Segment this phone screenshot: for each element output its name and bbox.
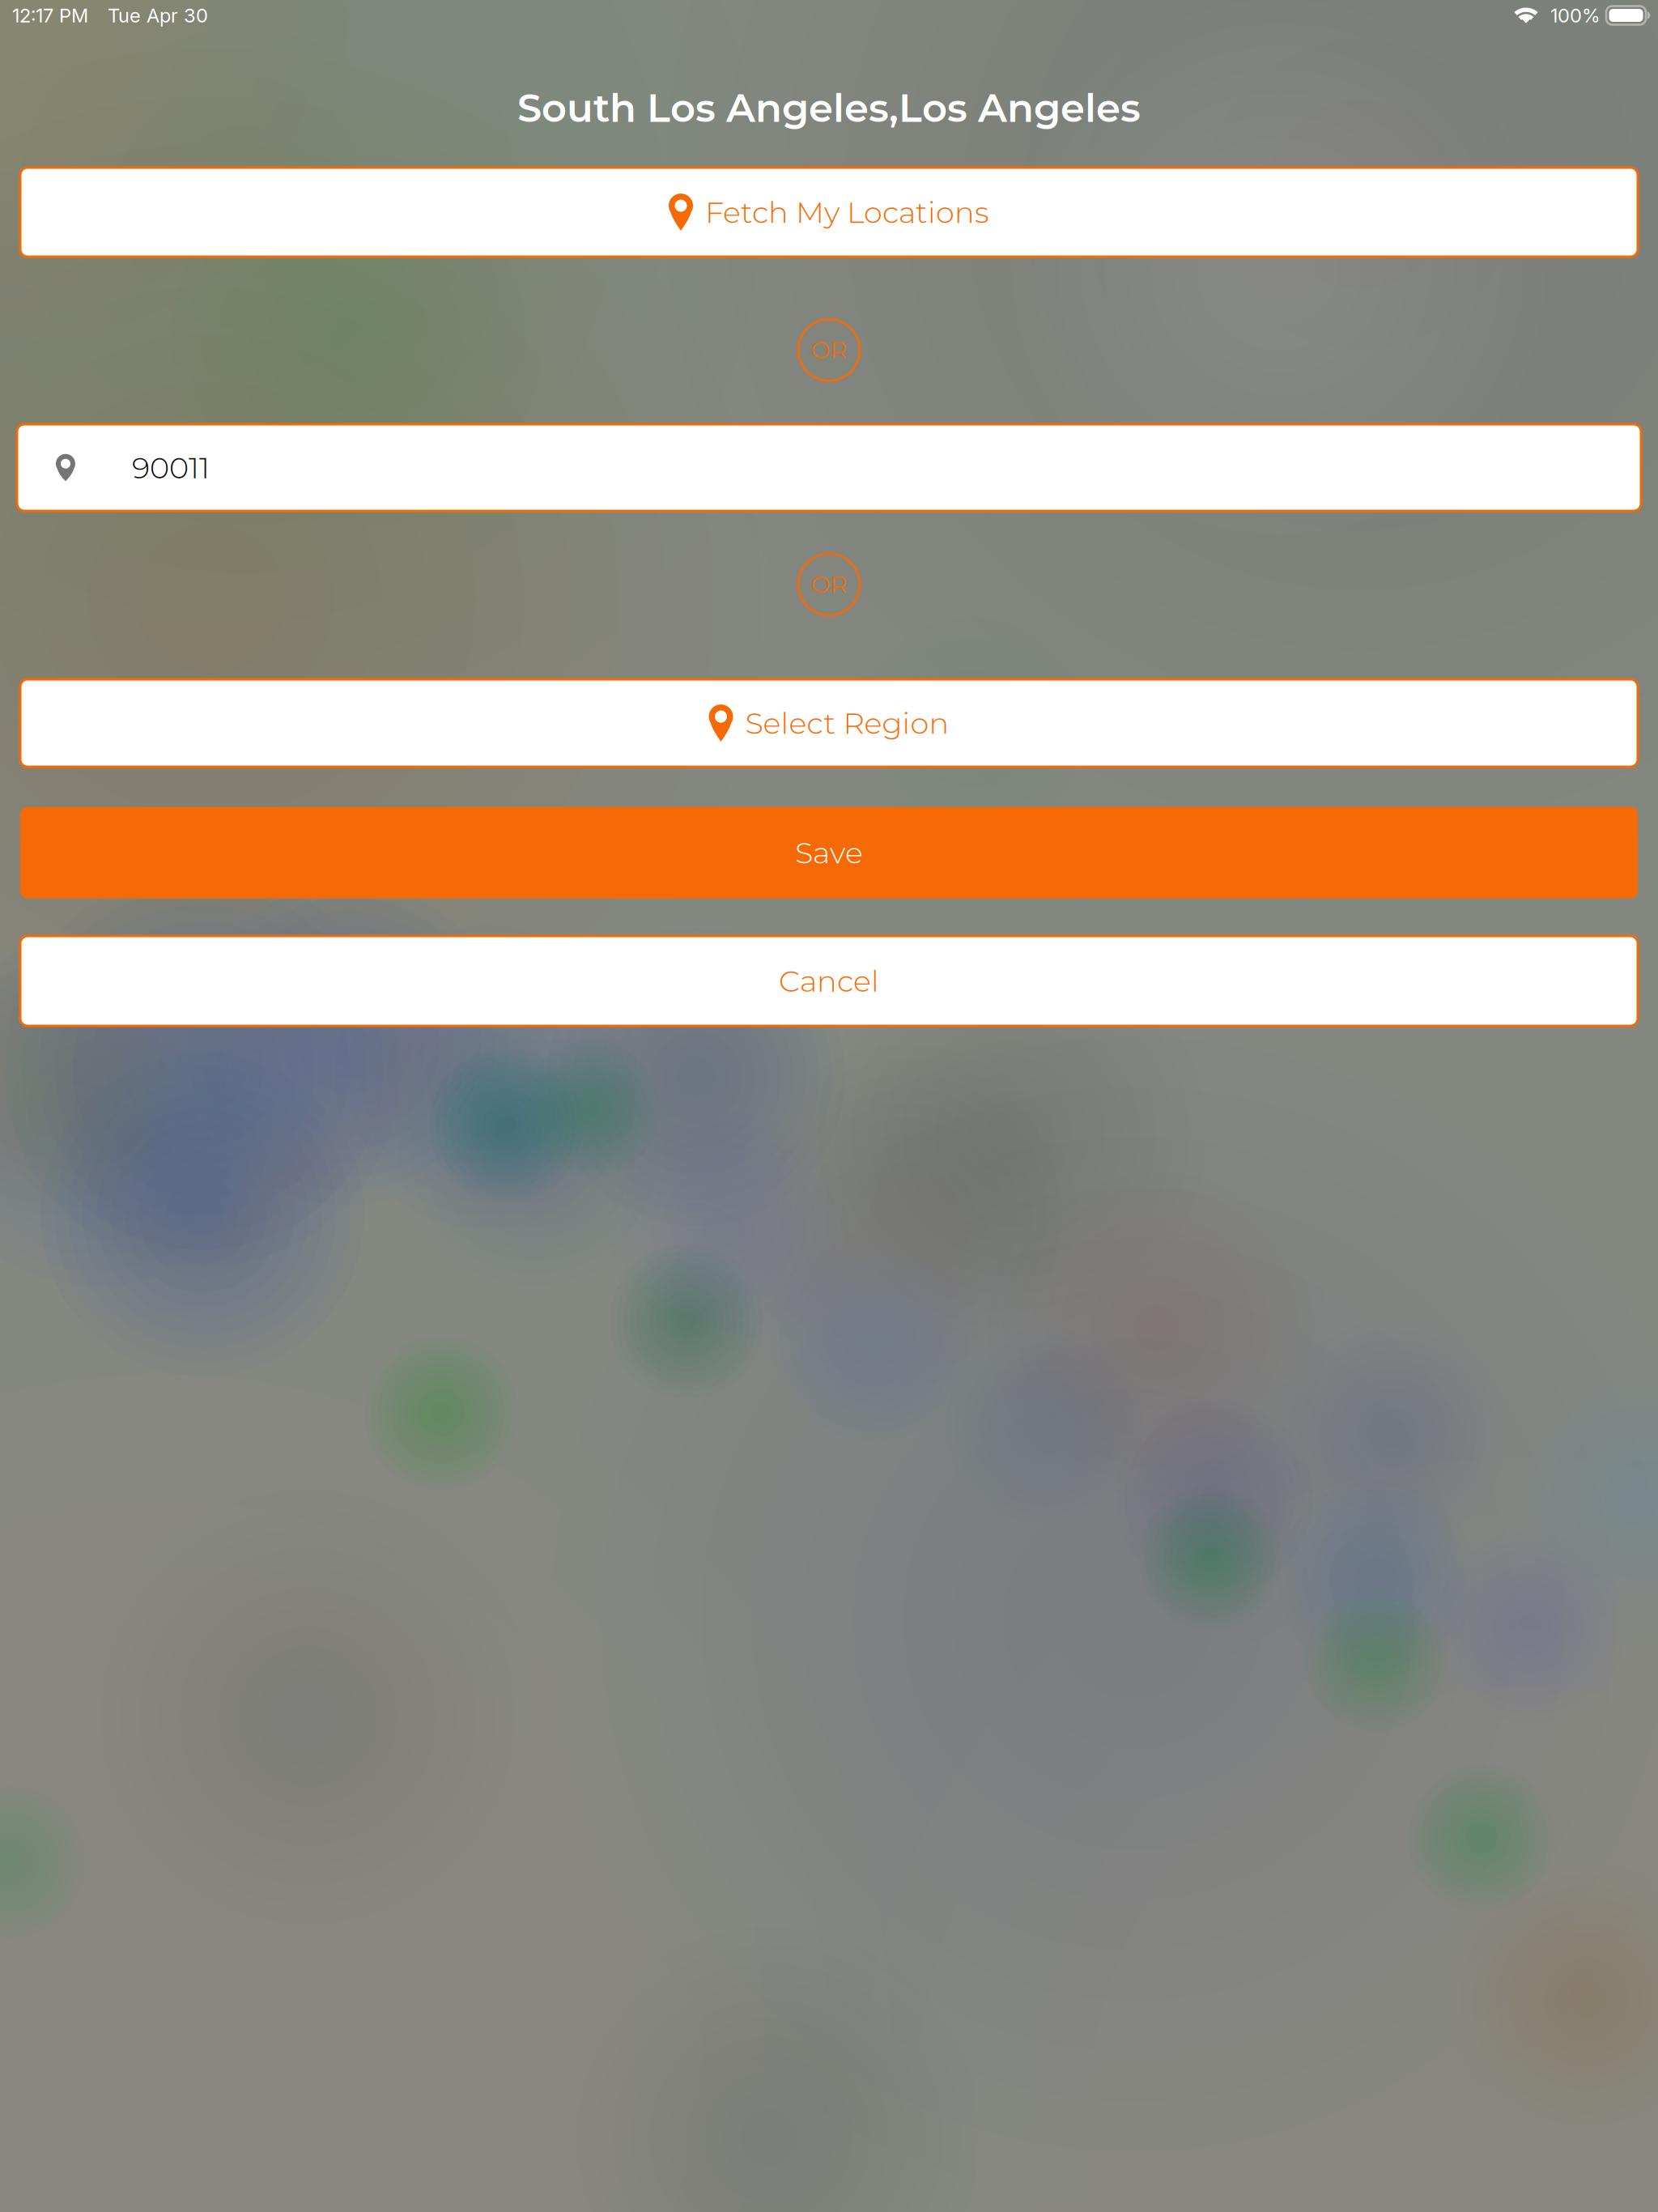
staticText: OR [811,336,847,364]
button[interactable]: Save [20,807,1638,898]
staticText: Fetch My Locations [705,194,989,230]
staticText: Cancel [779,963,879,999]
button[interactable]: Select Region [20,679,1638,767]
staticText: Save [795,835,863,871]
button[interactable]: Cancel [20,936,1638,1026]
button[interactable]: 90011 [17,424,1641,511]
staticText: South Los Angeles,Los Angeles [517,84,1141,132]
staticText: OR [811,570,847,599]
button[interactable]: Fetch My Locations [20,168,1638,257]
staticText: 12:17 PM [12,4,88,27]
staticText: 100% [1550,4,1601,27]
staticText: Select Region [745,705,949,741]
staticText: Tue Apr 30 [108,4,208,27]
staticText: 90011 [132,450,210,486]
